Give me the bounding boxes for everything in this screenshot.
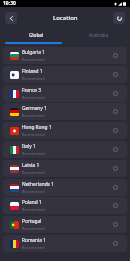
staticText: Recommend (22, 170, 45, 175)
staticText: 10:30 (3, 0, 16, 7)
staticText: Recommend (22, 76, 45, 81)
staticText: Latvia 1 (22, 162, 40, 169)
button[interactable]: Germany 1 (3, 103, 127, 120)
staticText: Italy 1 (22, 143, 36, 150)
button[interactable]: Global (5, 29, 67, 47)
staticText: Global (29, 32, 44, 38)
staticText: France 3 (22, 87, 42, 94)
staticText: Recommend (22, 113, 45, 118)
button[interactable]: Portugal (3, 216, 127, 233)
button[interactable]: Italy 1 (3, 141, 127, 158)
staticText: Recommend (22, 95, 45, 100)
staticText: Bulgaria 1 (22, 49, 45, 56)
button[interactable]: Back (5, 12, 17, 24)
staticText: Recommend (22, 151, 45, 156)
staticText: Hong Kong 1 (22, 124, 52, 131)
staticText: Australia (89, 32, 108, 38)
button[interactable]: Finland 1 (3, 66, 127, 83)
button[interactable]: Bulgaria 1 (3, 47, 127, 64)
button[interactable]: Australia (67, 29, 130, 47)
button[interactable]: France 3 (3, 85, 127, 102)
staticText: Recommend (22, 245, 45, 250)
staticText: Recommend (22, 132, 45, 137)
staticText: Recommend (22, 189, 45, 194)
staticText: Poland 1 (22, 199, 42, 206)
button[interactable]: Refresh (113, 12, 125, 24)
button[interactable]: Romania 1 (3, 235, 127, 252)
staticText: Recommend (22, 207, 45, 212)
button[interactable]: Poland 1 (3, 197, 127, 214)
staticText: Finland 1 (22, 68, 43, 75)
staticText: Location (53, 14, 78, 22)
staticText: Recommend (22, 57, 45, 62)
button[interactable]: Netherlands 1 (3, 179, 127, 196)
staticText: Romania 1 (22, 237, 46, 244)
button[interactable]: Hong Kong 1 (3, 122, 127, 139)
staticText: Germany 1 (22, 105, 47, 112)
staticText: Recommend (22, 226, 45, 231)
staticText: Netherlands 1 (22, 181, 54, 188)
button[interactable]: Latvia 1 (3, 160, 127, 177)
staticText: Portugal (22, 218, 42, 225)
